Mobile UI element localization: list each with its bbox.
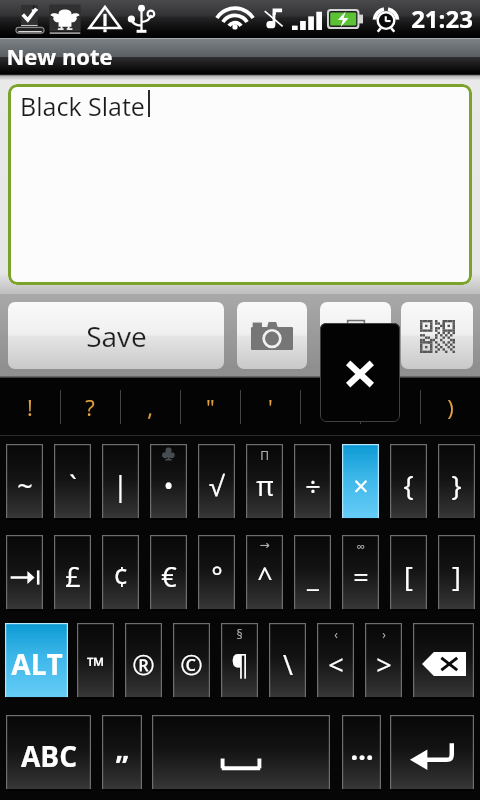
staticText: ; <box>327 392 333 422</box>
staticText: [ <box>404 558 413 595</box>
staticText: ♣ <box>161 447 176 461</box>
button[interactable]: , <box>120 378 180 436</box>
staticText: 21:23 <box>411 2 473 35</box>
staticText: ] <box>452 558 461 595</box>
staticText: ALT <box>11 645 63 683</box>
staticText: ~ <box>17 467 33 504</box>
button[interactable]: ` <box>54 444 91 520</box>
staticText: " <box>206 392 215 422</box>
staticText: π <box>256 467 274 504</box>
button[interactable]: € <box>150 535 187 611</box>
staticText: Black Slate <box>20 89 145 123</box>
button[interactable]: } <box>438 444 475 520</box>
staticText: : <box>387 392 393 422</box>
staticText: ` <box>69 467 77 504</box>
staticText: © <box>180 646 203 683</box>
button[interactable]: → <box>246 535 283 611</box>
staticText: ¶ <box>231 646 249 683</box>
button[interactable]: ™ <box>77 623 114 699</box>
staticText: ? <box>85 392 95 422</box>
button[interactable]: © <box>173 623 210 699</box>
staticText: ÷ <box>305 467 321 504</box>
staticText: £ <box>65 558 81 595</box>
button[interactable]: ) <box>420 378 480 436</box>
button[interactable]: ¢ <box>102 535 139 611</box>
button[interactable] <box>152 715 330 791</box>
button[interactable] <box>390 715 474 791</box>
button[interactable] <box>6 535 43 611</box>
button[interactable]: „ <box>102 715 142 791</box>
button[interactable]: Save <box>8 302 224 369</box>
staticText: ° <box>211 558 223 595</box>
button[interactable]: ] <box>438 535 475 611</box>
button[interactable]: ° <box>198 535 235 611</box>
staticText: , <box>147 392 153 422</box>
button[interactable]: × <box>342 444 379 520</box>
button[interactable]: Delete <box>320 302 391 369</box>
staticText: • <box>163 467 174 504</box>
staticText: ABC <box>21 737 77 775</box>
button[interactable]: | <box>102 444 139 520</box>
staticText: ® <box>132 646 155 683</box>
staticText: ^ <box>257 558 273 595</box>
staticText: } <box>451 467 462 504</box>
button[interactable]: Π <box>246 444 283 520</box>
staticText: € <box>161 558 177 595</box>
button[interactable]: _ <box>294 535 331 611</box>
other: Multiply key preview <box>320 323 400 422</box>
button[interactable]: { <box>390 444 427 520</box>
staticText: Π <box>260 447 269 463</box>
button[interactable]: Scan QR code <box>401 302 473 369</box>
staticText: ) <box>447 392 454 422</box>
button[interactable]: › <box>365 623 402 699</box>
button[interactable]: : <box>360 378 420 436</box>
staticText: „ <box>115 729 130 767</box>
button[interactable]: ÷ <box>294 444 331 520</box>
staticText: ' <box>268 392 273 422</box>
button[interactable]: ∞ <box>342 535 379 611</box>
staticText: ‹ <box>334 626 338 642</box>
button[interactable]: ~ <box>6 444 43 520</box>
button[interactable]: ? <box>60 378 120 436</box>
button[interactable]: ABC <box>6 715 91 791</box>
staticText: > <box>376 646 392 683</box>
staticText: § <box>236 626 243 642</box>
staticText: \ <box>283 646 293 683</box>
button[interactable]: ® <box>125 623 162 699</box>
button[interactable]: Camera <box>237 302 307 369</box>
staticText: _ <box>307 558 319 595</box>
staticText: ¢ <box>113 558 129 595</box>
staticText: ! <box>27 392 33 422</box>
button[interactable]: £ <box>54 535 91 611</box>
button[interactable] <box>413 623 474 699</box>
staticText: √ <box>209 467 224 504</box>
button[interactable]: ‹ <box>317 623 354 699</box>
staticText: { <box>403 467 414 504</box>
staticText: ™ <box>87 649 105 680</box>
button[interactable]: Black Slate <box>8 84 472 285</box>
button[interactable]: [ <box>390 535 427 611</box>
staticText: New note <box>6 41 113 71</box>
button[interactable]: … <box>342 715 381 791</box>
button[interactable]: § <box>221 623 258 699</box>
staticText: = <box>353 558 369 595</box>
staticText: × <box>353 467 369 504</box>
button[interactable]: ! <box>0 378 60 436</box>
staticText: | <box>113 467 128 504</box>
button[interactable]: \ <box>269 623 306 699</box>
staticText: … <box>350 731 374 768</box>
staticText: ∞ <box>356 538 365 554</box>
button[interactable]: ; <box>300 378 360 436</box>
button[interactable]: √ <box>198 444 235 520</box>
button[interactable]: ALT <box>5 623 68 699</box>
button[interactable]: ♣ <box>150 444 187 520</box>
staticText: < <box>328 646 344 683</box>
staticText: › <box>382 626 386 642</box>
staticText: Save <box>86 317 147 355</box>
button[interactable]: ' <box>240 378 300 436</box>
button[interactable]: " <box>180 378 240 436</box>
staticText: → <box>259 538 270 552</box>
